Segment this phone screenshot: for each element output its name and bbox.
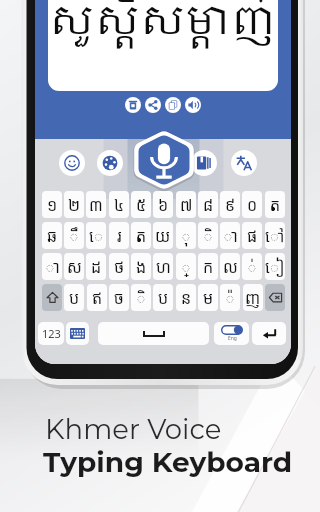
button[interactable]: Space bbox=[98, 322, 209, 345]
staticText: ង bbox=[136, 256, 147, 278]
button[interactable]: Backspace bbox=[265, 284, 285, 311]
button[interactable]: ប bbox=[153, 284, 173, 311]
staticText: ផ bbox=[247, 225, 258, 247]
button[interactable]: ិ bbox=[198, 222, 218, 249]
staticText: ន bbox=[181, 287, 192, 309]
button[interactable]: ល bbox=[220, 253, 240, 280]
button[interactable]: ហ bbox=[153, 253, 173, 280]
staticText: ត bbox=[270, 194, 281, 216]
button[interactable]: ត bbox=[265, 191, 285, 218]
button[interactable]: Language bbox=[214, 322, 249, 345]
button[interactable]: Dictionary bbox=[191, 150, 217, 176]
staticText: ឆ bbox=[47, 225, 58, 247]
staticText: ស bbox=[67, 256, 82, 278]
staticText: ឥ bbox=[92, 287, 103, 309]
button[interactable]: Switch keyboard bbox=[66, 322, 89, 345]
staticText: ា bbox=[223, 225, 238, 247]
button[interactable]: ៀ bbox=[265, 253, 285, 280]
button[interactable]: ឆ bbox=[42, 222, 62, 249]
button[interactable]: យ bbox=[153, 222, 173, 249]
button[interactable]: ៨ bbox=[198, 191, 218, 218]
staticText: ១ bbox=[47, 194, 58, 216]
button[interactable]: Enter bbox=[252, 322, 286, 345]
staticText: ប bbox=[69, 287, 80, 309]
button[interactable]: Numbers bbox=[38, 322, 64, 345]
button[interactable]: ឹ bbox=[64, 222, 84, 249]
staticText: ញ bbox=[245, 287, 261, 309]
button[interactable]: Themes bbox=[97, 150, 123, 176]
button[interactable]: ញ bbox=[243, 284, 263, 311]
staticText: ដ bbox=[91, 256, 102, 278]
staticText: សួស្តីសម្តាញ់ bbox=[49, 0, 277, 57]
button[interactable]: ៅ bbox=[265, 222, 285, 249]
staticText: ៤ bbox=[114, 194, 125, 216]
button[interactable]: ្ bbox=[176, 253, 196, 280]
button[interactable]: ា bbox=[220, 222, 240, 249]
staticText: ច bbox=[114, 287, 124, 309]
button[interactable]: ់ bbox=[242, 253, 262, 280]
button[interactable]: Voice input bbox=[133, 129, 195, 191]
staticText: េ bbox=[89, 225, 104, 247]
staticText: ៧ bbox=[180, 194, 193, 216]
staticText: ២ bbox=[68, 194, 81, 216]
button[interactable]: Translate bbox=[231, 150, 257, 176]
button[interactable]: ២ bbox=[64, 191, 84, 218]
staticText: ថ bbox=[114, 256, 125, 278]
button[interactable]: ក bbox=[198, 253, 218, 280]
staticText: ុ bbox=[181, 225, 192, 247]
staticText: ិ bbox=[203, 225, 214, 247]
button[interactable]: ិ bbox=[131, 284, 151, 311]
staticText: ល bbox=[223, 256, 238, 278]
button[interactable]: ា bbox=[42, 253, 62, 280]
staticText: 123 bbox=[42, 326, 61, 341]
button[interactable]: Shift bbox=[42, 284, 62, 311]
staticText: ក bbox=[203, 256, 214, 278]
button[interactable]: ត bbox=[131, 222, 151, 249]
staticText: ៅ bbox=[265, 225, 285, 247]
staticText: ៨ bbox=[203, 194, 214, 216]
staticText: ៩ bbox=[225, 194, 236, 216]
staticText: ៣ bbox=[89, 194, 103, 216]
button[interactable]: ៦ bbox=[153, 191, 173, 218]
staticText: ហ bbox=[156, 256, 171, 278]
button[interactable]: ៤ bbox=[109, 191, 129, 218]
button[interactable]: ផ bbox=[242, 222, 262, 249]
button[interactable]: ន bbox=[176, 284, 196, 311]
button[interactable]: Emoji bbox=[59, 150, 85, 176]
button[interactable]: ង bbox=[131, 253, 151, 280]
button[interactable]: ថ bbox=[109, 253, 129, 280]
button[interactable]: Speak bbox=[185, 97, 201, 113]
staticText: ្ bbox=[181, 256, 192, 278]
staticText: ៉ bbox=[225, 287, 236, 309]
button[interactable]: ៉ bbox=[220, 284, 240, 311]
staticText: យ bbox=[155, 225, 171, 247]
staticText: ិ bbox=[136, 287, 147, 309]
staticText: ០ bbox=[247, 194, 258, 216]
button[interactable]: ៣ bbox=[86, 191, 106, 218]
button[interactable]: ០ bbox=[242, 191, 262, 218]
button[interactable]: Clear text bbox=[125, 97, 141, 113]
button[interactable]: ស bbox=[64, 253, 84, 280]
staticText: Khmer Voice bbox=[45, 412, 222, 446]
staticText: ត bbox=[136, 225, 147, 247]
button[interactable]: េ bbox=[86, 222, 106, 249]
button[interactable]: ១ bbox=[42, 191, 62, 218]
staticText: ៦ bbox=[158, 194, 169, 216]
button[interactable]: ប bbox=[64, 284, 84, 311]
button[interactable]: ឥ bbox=[87, 284, 107, 311]
button[interactable]: Copy bbox=[165, 97, 181, 113]
button[interactable]: ដ bbox=[86, 253, 106, 280]
button[interactable]: Share bbox=[145, 97, 161, 113]
staticText: Eng bbox=[228, 335, 237, 342]
button[interactable]: ៥ bbox=[131, 191, 151, 218]
button[interactable]: ៩ bbox=[220, 191, 240, 218]
button[interactable]: ៧ bbox=[176, 191, 196, 218]
staticText: រ bbox=[117, 225, 122, 247]
staticText: Typing Keyboard bbox=[43, 445, 293, 479]
button[interactable]: ម bbox=[198, 284, 218, 311]
button[interactable]: រ bbox=[109, 222, 129, 249]
staticText: ប bbox=[158, 287, 169, 309]
button[interactable]: ច bbox=[109, 284, 129, 311]
staticText: ឹ bbox=[69, 225, 80, 247]
button[interactable]: ុ bbox=[176, 222, 196, 249]
